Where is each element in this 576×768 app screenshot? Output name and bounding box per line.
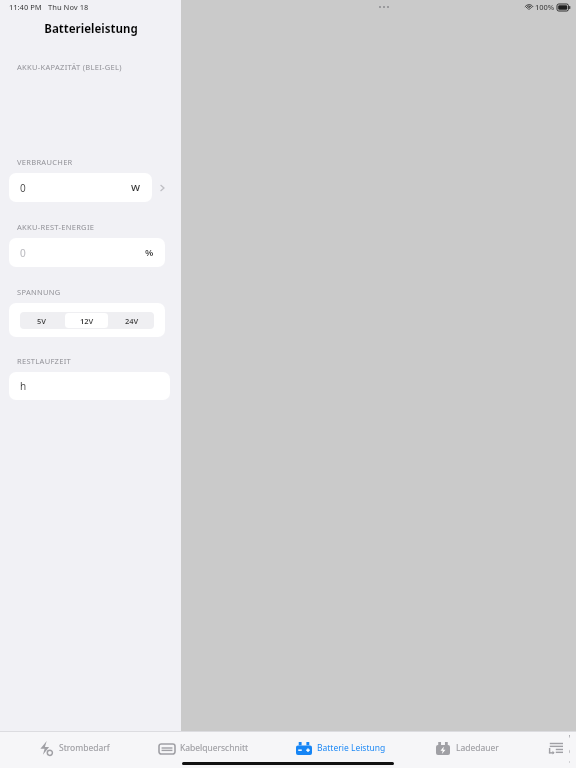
button[interactable]: Batterie Leistung	[289, 733, 392, 763]
button[interactable]: 24V	[110, 313, 153, 328]
staticText: 11:40 PM	[9, 2, 42, 12]
button[interactable]: 12V	[65, 313, 108, 328]
staticText: h	[20, 379, 27, 393]
button[interactable]: Verbraucher	[541, 733, 576, 763]
button[interactable]: Ladedauer	[428, 733, 505, 763]
staticText: Thu Nov 18	[48, 2, 89, 12]
staticText: 12V	[80, 316, 94, 326]
staticText: W	[131, 181, 141, 194]
staticText: AKKU-KAPAZITÄT (BLEI-GEL)	[17, 62, 122, 72]
staticText: %	[145, 246, 154, 259]
staticText: 100%	[535, 2, 555, 12]
button[interactable]: Kabelquerschnitt	[152, 733, 255, 763]
staticText: SPANNUNG	[17, 287, 61, 297]
staticText: 5V	[37, 316, 47, 326]
staticText: Batterie Leistung	[317, 742, 386, 754]
button[interactable]: 0	[9, 238, 165, 267]
button[interactable]: Verbraucher öffnen	[155, 173, 169, 202]
staticText: 24V	[125, 316, 139, 326]
button[interactable]: 0	[9, 173, 152, 202]
staticText: 0	[20, 246, 26, 260]
staticText: AKKU-REST-ENERGIE	[17, 222, 95, 232]
staticText: Verbraucher	[569, 733, 570, 763]
staticText: Strombedarf	[59, 742, 110, 754]
staticText: Kabelquerschnitt	[180, 742, 249, 754]
button[interactable]: h	[9, 372, 170, 400]
staticText: 0	[20, 181, 26, 195]
staticText: RESTLAUFZEIT	[17, 356, 71, 366]
staticText: VERBRAUCHER	[17, 157, 73, 167]
staticText: Ladedauer	[456, 742, 499, 754]
button[interactable]: 5V	[21, 313, 63, 328]
button[interactable]: Strombedarf	[31, 733, 116, 763]
staticText: Batterieleistung	[44, 21, 138, 37]
